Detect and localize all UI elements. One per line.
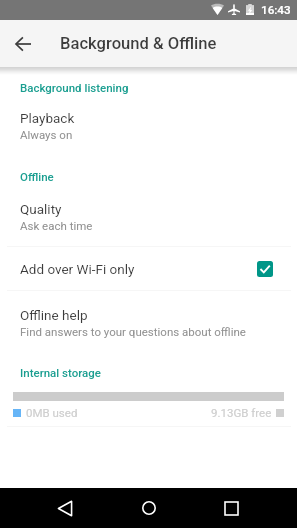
- staticText: Quality: [20, 201, 62, 217]
- button[interactable]: Navigate up: [7, 28, 39, 60]
- button[interactable]: Add over Wi-Fi only: [0, 247, 297, 290]
- staticText: Background & Offline: [60, 34, 217, 53]
- button[interactable]: Recent apps: [209, 490, 253, 526]
- staticText: Offline: [20, 170, 54, 183]
- staticText: Offline help: [20, 307, 88, 323]
- staticText: Background listening: [20, 81, 129, 94]
- staticText: 0MB used: [26, 406, 78, 419]
- button[interactable]: Offline help: [0, 307, 297, 338]
- button[interactable]: Playback: [0, 110, 297, 141]
- button[interactable]: Home: [127, 490, 171, 526]
- staticText: Internal storage: [20, 366, 101, 379]
- staticText: 9.13GB free: [211, 406, 272, 419]
- button[interactable]: Back: [43, 490, 87, 526]
- staticText: 16:43: [261, 3, 291, 17]
- staticText: Playback: [20, 110, 75, 126]
- staticText: Ask each time: [20, 219, 93, 232]
- staticText: Add over Wi-Fi only: [20, 261, 257, 277]
- staticText: Find answers to your questions about off…: [20, 325, 246, 338]
- button[interactable]: Quality: [0, 201, 297, 232]
- staticText: Always on: [20, 128, 73, 141]
